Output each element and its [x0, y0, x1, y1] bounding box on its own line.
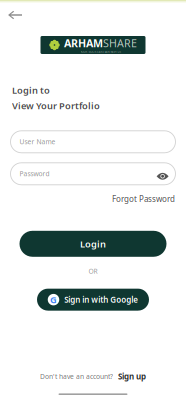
staticText: Login to	[12, 84, 50, 96]
staticText: ARHAM	[64, 36, 103, 50]
staticText: SHARE	[103, 36, 137, 50]
button[interactable]: G	[37, 289, 149, 311]
button[interactable]: Back	[0, 4, 32, 24]
button[interactable]: Sign up	[118, 371, 146, 382]
staticText: G	[50, 293, 57, 306]
button[interactable]: Show password	[156, 172, 169, 180]
staticText: YOUR STOCKS ARE SAFE WITH US	[80, 50, 120, 54]
staticText: OR	[88, 267, 97, 276]
staticText: Sign in with Google	[64, 294, 138, 305]
staticText: Login	[80, 238, 106, 250]
staticText: View Your Portfolio	[12, 99, 100, 112]
button[interactable]: Forgot Password	[112, 193, 175, 204]
button[interactable]: Login	[19, 231, 166, 257]
staticText: Sign up	[118, 371, 146, 382]
staticText: Password	[19, 169, 49, 178]
staticText: User Name	[19, 137, 55, 146]
staticText: Forgot Password	[112, 193, 175, 204]
staticText: Don't have an account?	[40, 372, 113, 381]
